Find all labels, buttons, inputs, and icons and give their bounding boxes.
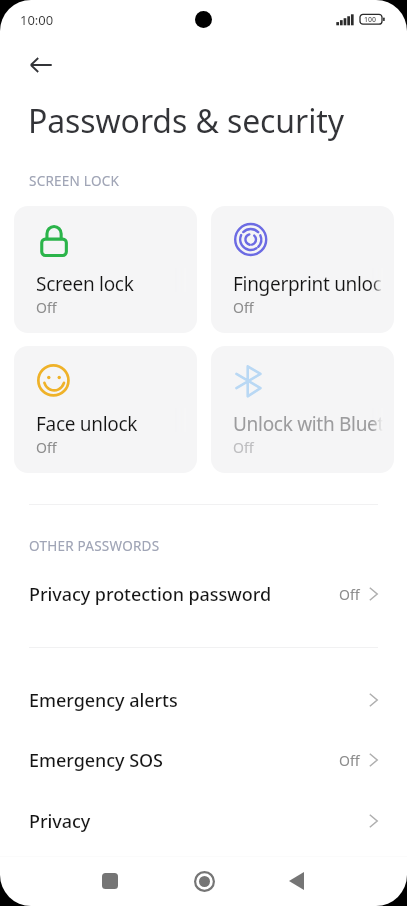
staticText: Emergency SOS xyxy=(29,748,339,773)
button[interactable]: Fingerprint unlock xyxy=(211,206,394,333)
staticText: Passwords & security xyxy=(28,99,344,143)
button[interactable]: Home xyxy=(180,857,228,905)
staticText: OTHER PASSWORDS xyxy=(29,537,160,555)
staticText: SCREEN LOCK xyxy=(29,172,120,190)
button[interactable]: Back xyxy=(20,44,61,85)
staticText: Off xyxy=(233,298,254,317)
button[interactable]: Unlock with Bluetooth xyxy=(211,346,394,473)
button[interactable]: Recent apps xyxy=(86,857,134,905)
button[interactable]: Screen lock xyxy=(14,206,197,333)
button[interactable]: Face unlock xyxy=(14,346,197,473)
staticText: Screen lock xyxy=(36,271,134,297)
staticText: Off xyxy=(339,751,360,770)
staticText: Emergency alerts xyxy=(29,688,369,713)
staticText: Privacy xyxy=(29,809,369,834)
button[interactable]: Emergency alerts xyxy=(0,670,407,730)
staticText: Privacy protection password xyxy=(29,582,339,607)
staticText: Fingerprint unlock xyxy=(233,271,392,297)
staticText: Off xyxy=(233,438,254,457)
staticText: Off xyxy=(339,585,360,604)
staticText: Off xyxy=(36,438,57,457)
staticText: Off xyxy=(36,298,57,317)
button[interactable]: Back xyxy=(272,857,320,905)
staticText: 10:00 xyxy=(20,11,54,29)
button[interactable]: Privacy protection password xyxy=(0,564,407,624)
button[interactable]: Emergency SOS xyxy=(0,730,407,790)
staticText: Unlock with Bluetooth xyxy=(233,411,394,437)
button[interactable]: Privacy xyxy=(0,791,407,851)
staticText: 100 xyxy=(364,15,377,25)
staticText: Face unlock xyxy=(36,411,138,437)
